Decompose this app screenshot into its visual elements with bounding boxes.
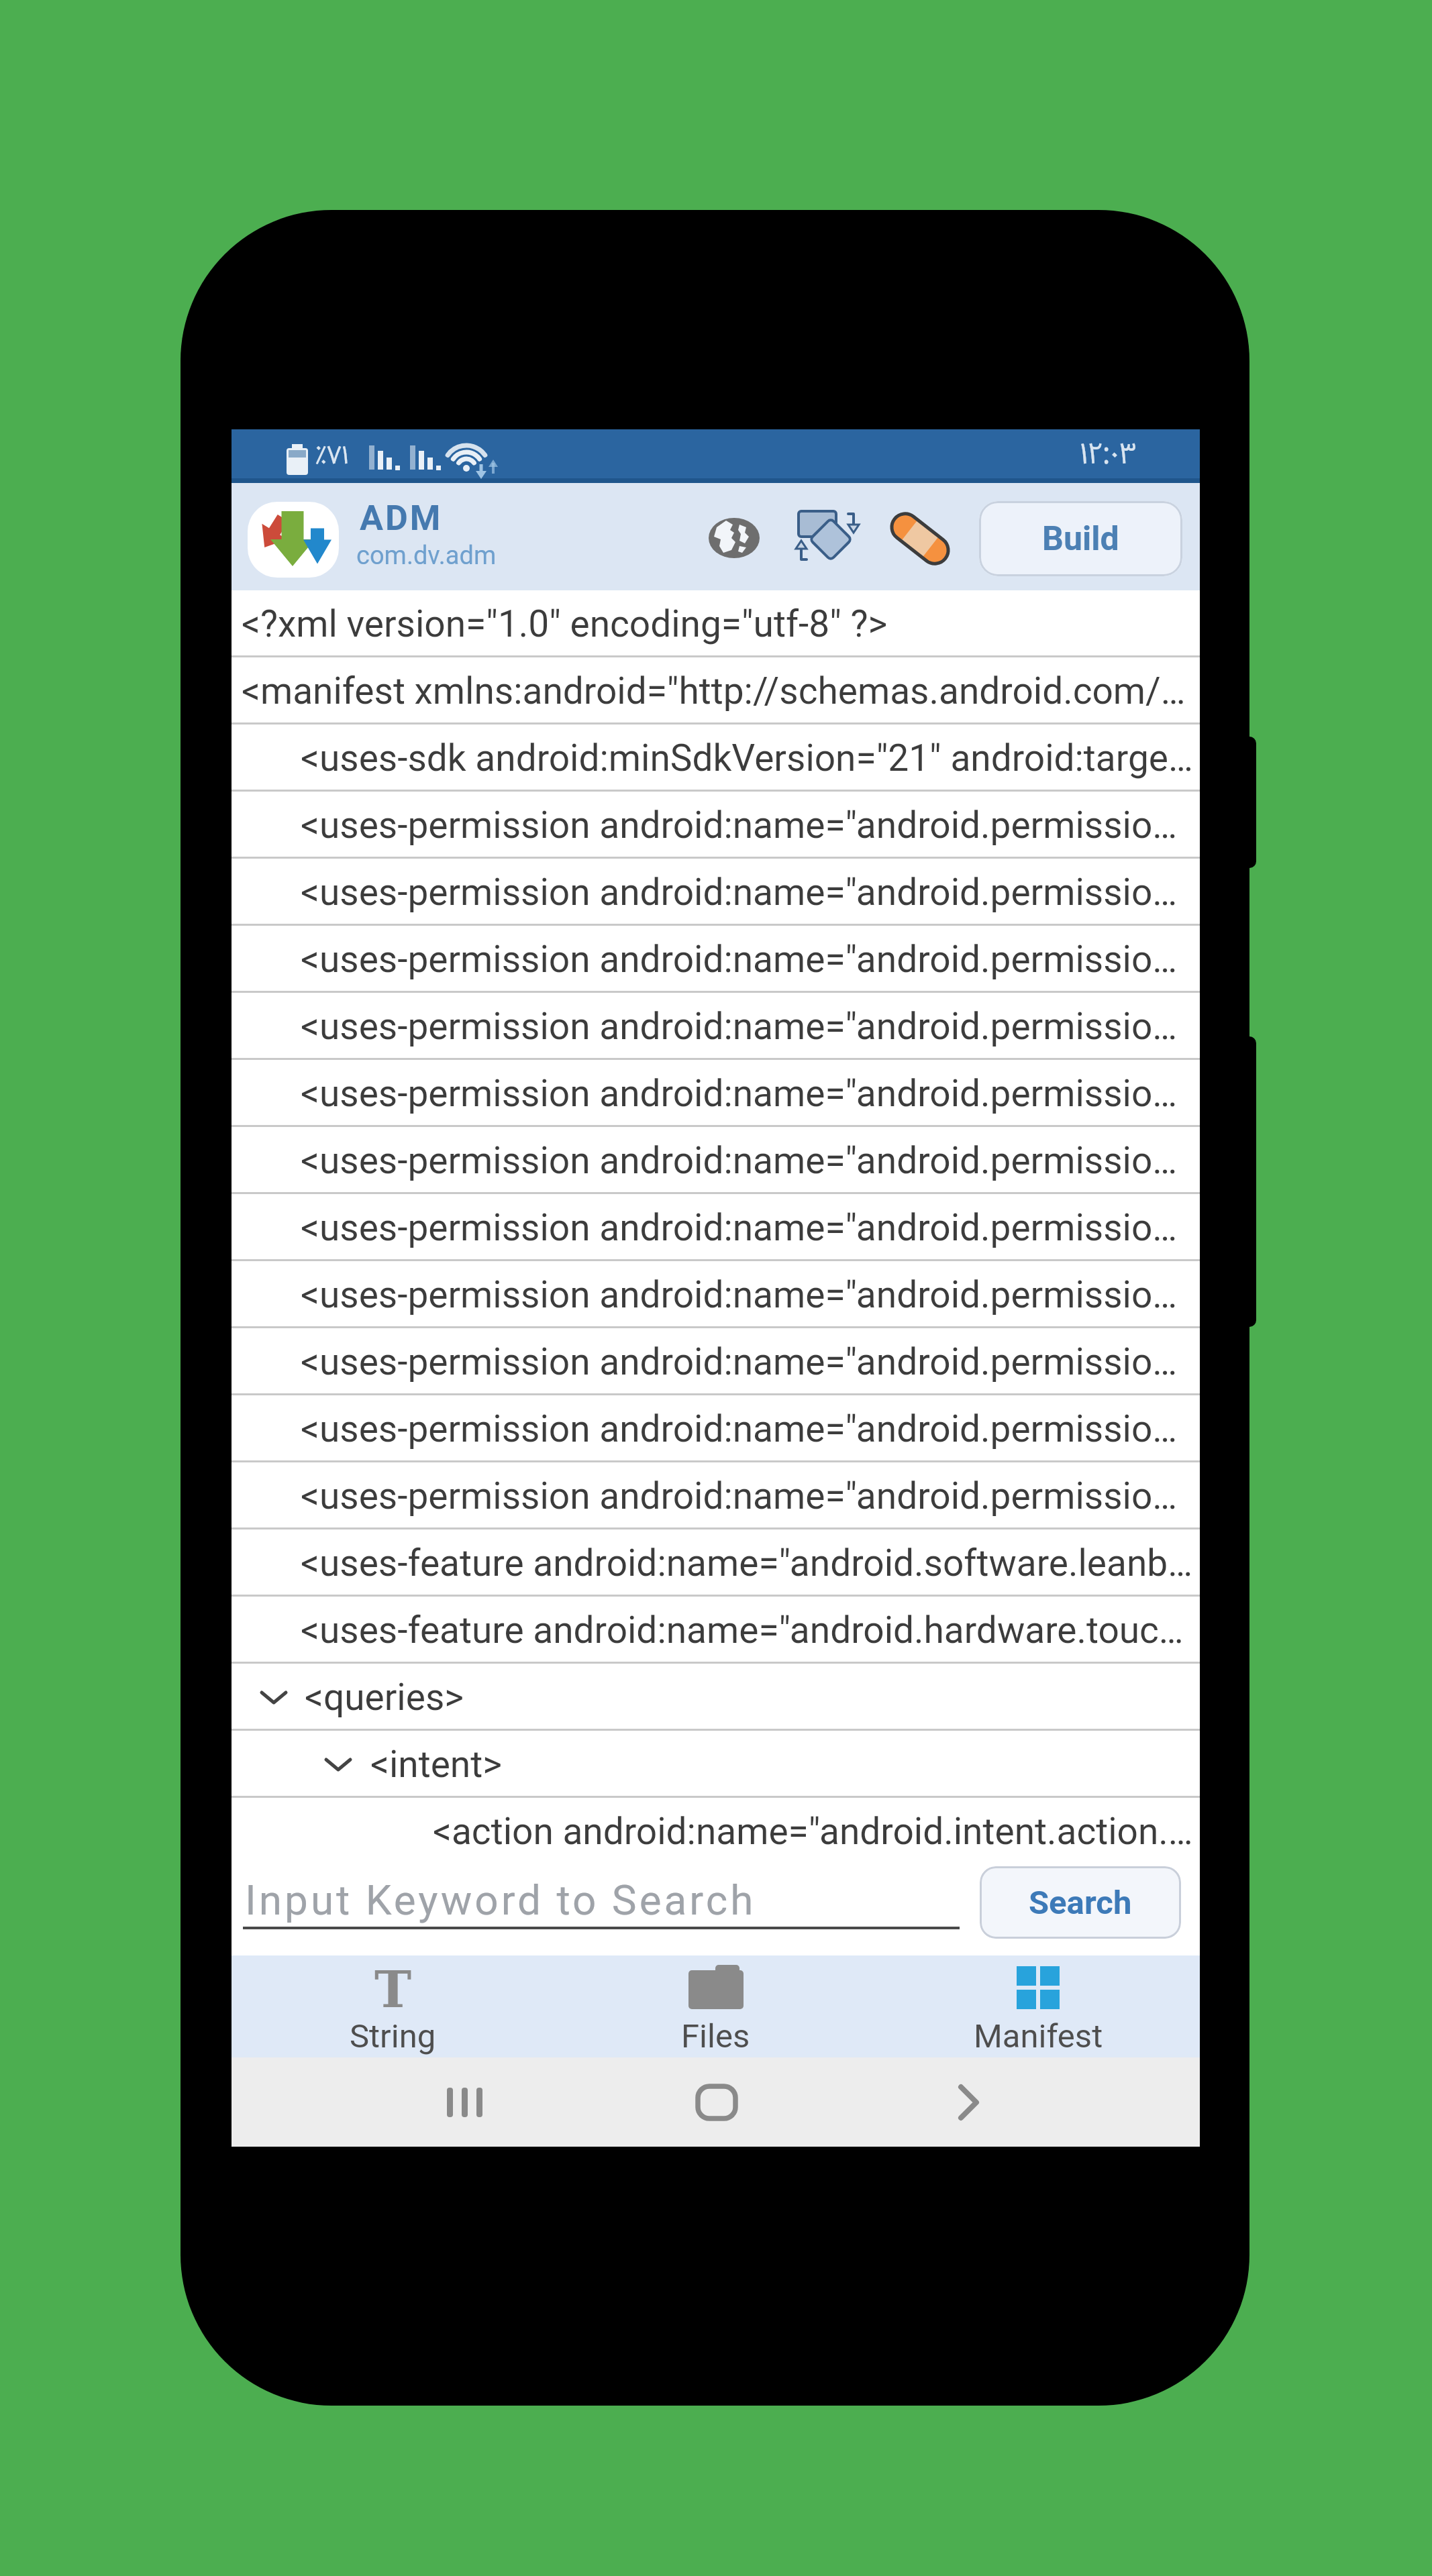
staticText: <uses-feature android:name="android.hard… <box>301 1609 1196 1652</box>
staticText: String <box>350 2017 436 2055</box>
staticText: T <box>374 1961 412 2019</box>
staticText: <uses-permission android:name="android.p… <box>301 1474 1196 1517</box>
staticText: <uses-permission android:name="android.p… <box>301 1340 1196 1383</box>
staticText: Manifest <box>974 2017 1103 2055</box>
staticText: Files <box>681 2017 750 2055</box>
staticText: ١٢:٠٣ <box>1080 432 1137 472</box>
staticText: com.dv.adm <box>356 541 497 571</box>
staticText: <uses-permission android:name="android.p… <box>301 1139 1196 1182</box>
staticText: <queries> <box>305 1676 464 1719</box>
staticText: <uses-sdk android:minSdkVersion="21" and… <box>301 737 1196 780</box>
staticText: ٪٧١ <box>315 436 349 471</box>
staticText: <uses-permission android:name="android.p… <box>301 804 1196 847</box>
staticText: <uses-permission android:name="android.p… <box>301 871 1196 914</box>
staticText: Input Keyword to Search <box>245 1876 756 1925</box>
staticText: Build <box>1042 519 1119 559</box>
staticText: <uses-permission android:name="android.p… <box>301 1206 1196 1249</box>
staticText: <uses-permission android:name="android.p… <box>301 1273 1196 1316</box>
staticText: <uses-feature android:name="android.soft… <box>301 1542 1196 1585</box>
staticText: <uses-permission android:name="android.p… <box>301 1072 1196 1115</box>
staticText: <uses-permission android:name="android.p… <box>301 938 1196 981</box>
staticText: <manifest xmlns:android="http://schemas.… <box>242 669 1196 712</box>
staticText: <intent> <box>370 1743 502 1786</box>
staticText: <uses-permission android:name="android.p… <box>301 1005 1196 1048</box>
staticText: <?xml version="1.0" encoding="utf-8" ?> <box>242 602 888 645</box>
staticText: Search <box>1029 1884 1132 1922</box>
staticText: <uses-permission android:name="android.p… <box>301 1407 1196 1450</box>
staticText: <action android:name="android.intent.act… <box>433 1810 1196 1853</box>
staticText: ADM <box>360 498 443 539</box>
